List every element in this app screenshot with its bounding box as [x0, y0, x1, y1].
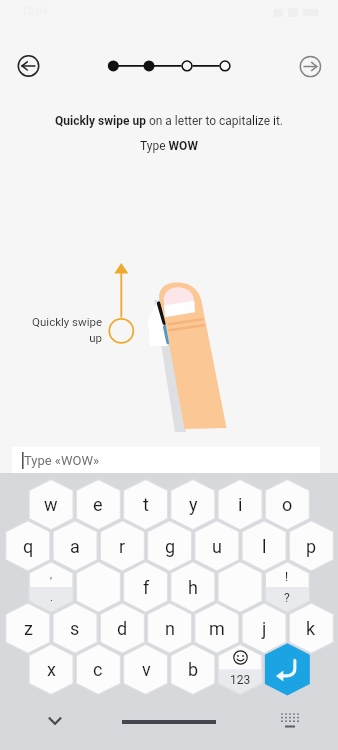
- staticText: Quickly swipe up on a letter to capitali…: [55, 114, 283, 128]
- button[interactable]: !: [265, 562, 309, 612]
- button[interactable]: x: [29, 644, 73, 694]
- staticText: h: [188, 577, 198, 598]
- button[interactable]: f: [124, 562, 168, 612]
- staticText: t: [143, 494, 149, 515]
- staticText: u: [212, 536, 222, 557]
- staticText: 123: [230, 673, 251, 687]
- button[interactable]: l: [242, 521, 286, 571]
- button[interactable]: y: [171, 479, 215, 529]
- staticText: f: [143, 577, 150, 598]
- button[interactable]: Back: [17, 54, 40, 77]
- staticText: l: [262, 536, 267, 557]
- staticText: Type WOW: [140, 139, 198, 153]
- button[interactable]: b: [171, 644, 215, 694]
- button[interactable]: k: [289, 603, 333, 653]
- staticText: n: [165, 618, 175, 639]
- staticText: g: [165, 536, 176, 557]
- button[interactable]: i: [218, 479, 262, 529]
- staticText: v: [142, 659, 151, 680]
- button[interactable]: p: [289, 521, 333, 571]
- button[interactable]: q: [6, 521, 50, 571]
- button[interactable]: n: [148, 603, 192, 653]
- staticText: p: [306, 536, 317, 557]
- staticText: w: [44, 494, 58, 515]
- button[interactable]: Switch keyboard: [278, 708, 302, 732]
- staticText: c: [93, 659, 103, 680]
- button[interactable]: Hide keyboard: [44, 710, 66, 732]
- staticText: x: [47, 659, 56, 680]
- staticText: y: [189, 494, 198, 515]
- staticText: m: [209, 618, 225, 639]
- button[interactable]: d: [100, 603, 144, 653]
- staticText: ,: [50, 568, 53, 581]
- button[interactable]: a: [53, 521, 97, 571]
- staticText: z: [24, 618, 33, 639]
- staticText: Quickly swipe up: [22, 315, 102, 345]
- button[interactable]: w: [29, 479, 73, 529]
- button[interactable]: h: [171, 562, 215, 612]
- button[interactable]: Enter: [265, 644, 309, 694]
- staticText: b: [188, 659, 199, 680]
- button[interactable]: e: [76, 479, 120, 529]
- button[interactable]: t: [124, 479, 168, 529]
- staticText: Type «WOW»: [24, 453, 100, 468]
- button[interactable]: Type «WOW»: [12, 447, 320, 473]
- staticText: o: [282, 494, 293, 515]
- button[interactable]: u: [195, 521, 239, 571]
- button[interactable]: r: [100, 521, 144, 571]
- button[interactable]: s: [53, 603, 97, 653]
- staticText: a: [70, 536, 80, 557]
- staticText: j: [262, 618, 267, 639]
- button[interactable]: ,: [29, 562, 73, 612]
- button[interactable]: Next: [299, 54, 322, 77]
- staticText: k: [306, 618, 316, 639]
- button[interactable]: g: [148, 521, 192, 571]
- staticText: r: [119, 536, 126, 557]
- staticText: e: [93, 494, 103, 515]
- button[interactable]: c: [76, 644, 120, 694]
- button[interactable]: j: [242, 603, 286, 653]
- button[interactable]: m: [195, 603, 239, 653]
- staticText: ?: [284, 591, 290, 605]
- staticText: !: [285, 570, 289, 584]
- staticText: d: [117, 618, 128, 639]
- button[interactable]: Emoji and numbers: [218, 644, 262, 694]
- button[interactable]: z: [6, 603, 50, 653]
- staticText: q: [23, 536, 34, 557]
- button[interactable]: o: [265, 479, 309, 529]
- staticText: i: [238, 494, 243, 515]
- staticText: s: [70, 618, 80, 639]
- staticText: .: [50, 591, 53, 604]
- button[interactable]: v: [124, 644, 168, 694]
